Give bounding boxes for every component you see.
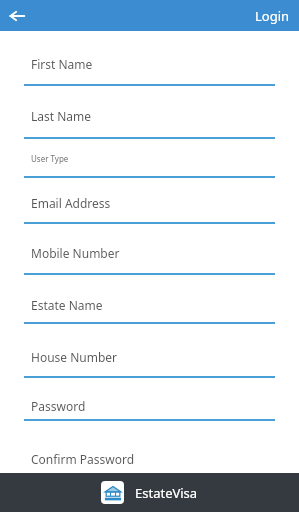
button[interactable]: Estate Name	[24, 292, 275, 318]
button[interactable]: Confirm Password	[24, 446, 275, 472]
staticText: Last Name	[31, 108, 92, 124]
button[interactable]: First Name	[24, 51, 275, 77]
button[interactable]: EstateVisa	[0, 473, 299, 512]
button[interactable]: Last Name	[24, 103, 275, 129]
button[interactable]: Password	[24, 393, 275, 419]
staticText: Mobile Number	[31, 245, 120, 261]
staticText: Estate Name	[31, 297, 103, 313]
button[interactable]: Mobile Number	[24, 240, 275, 266]
button[interactable]: House Number	[24, 344, 275, 370]
staticText: First Name	[31, 56, 93, 72]
staticText: Password	[31, 398, 86, 414]
button[interactable]: Email Address	[24, 190, 275, 216]
button[interactable]: Login	[246, 2, 299, 30]
staticText: User Type	[31, 153, 69, 164]
staticText: House Number	[31, 349, 118, 365]
button[interactable]: Back	[3, 2, 31, 30]
button[interactable]: User Type	[24, 148, 275, 168]
staticText: Confirm Password	[31, 451, 135, 467]
staticText: Login	[255, 7, 290, 25]
staticText: Email Address	[31, 195, 111, 211]
staticText: EstateVisa	[135, 484, 198, 502]
